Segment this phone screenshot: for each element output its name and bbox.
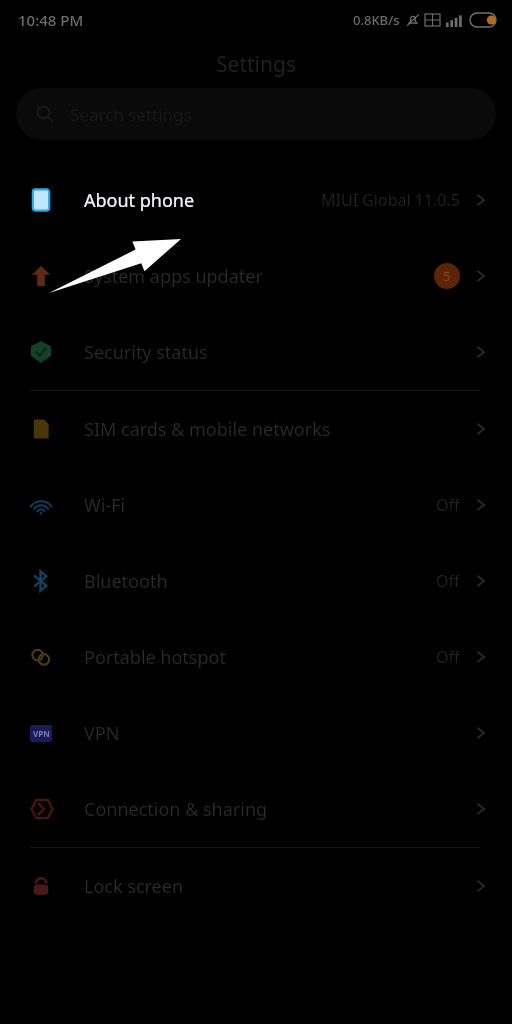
staticText: 5 [443,267,451,285]
staticText: Connection & sharing [84,797,268,822]
button[interactable]: About phone [0,162,512,238]
staticText: Wi-Fi [84,493,126,518]
staticText: 10:48 PM [18,10,84,30]
staticText: Off [436,570,460,592]
staticText: Security status [84,340,208,365]
staticText: 0.8KB/s [353,11,400,29]
staticText: SIM cards & mobile networks [84,417,331,442]
button[interactable]: SIM cards & mobile networks [0,391,512,467]
staticText: Bluetooth [84,569,168,594]
button[interactable]: Bluetooth [0,543,512,619]
button[interactable]: System apps updater [0,238,512,314]
button[interactable]: Wi-Fi [0,467,512,543]
button[interactable]: Connection & sharing [0,771,512,847]
staticText: Portable hotspot [84,645,226,670]
staticText: About phone [84,188,195,213]
staticText: Lock screen [84,874,184,899]
button[interactable]: VPN [0,695,512,771]
staticText: Off [436,494,460,516]
staticText: Settings [216,50,296,79]
button[interactable]: Security status [0,314,512,390]
button[interactable]: Lock screen [0,848,512,924]
staticText: VPN [84,721,120,746]
staticText: Off [436,646,460,668]
staticText: Search settings [70,103,192,126]
button[interactable]: Portable hotspot [0,619,512,695]
staticText: VPN [33,728,50,739]
staticText: MIUI Global 11.0.5 [321,189,460,211]
staticText: System apps updater [84,264,263,289]
